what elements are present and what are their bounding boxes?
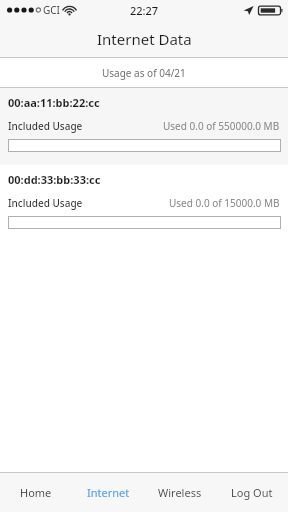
staticText: 00:dd:33:bb:33:cc xyxy=(8,172,101,187)
staticText: Internet xyxy=(87,485,130,500)
staticText: GCI xyxy=(43,3,60,17)
staticText: Usage as of 04/21 xyxy=(102,66,186,80)
staticText: Included Usage xyxy=(8,196,83,210)
staticText: Home xyxy=(20,485,52,500)
staticText: Internet Data xyxy=(97,29,192,49)
staticText: Wireless xyxy=(158,485,202,500)
staticText: Used 0.0 of 15000.0 MB xyxy=(169,196,280,210)
staticText: 00:aa:11:bb:22:cc xyxy=(8,95,100,110)
button[interactable]: 00:dd:33:bb:33:cc xyxy=(0,165,288,242)
staticText: Used 0.0 of 550000.0 MB xyxy=(163,119,280,133)
button[interactable]: Wireless xyxy=(144,473,216,512)
button[interactable]: Internet xyxy=(72,473,144,512)
button[interactable]: 00:aa:11:bb:22:cc xyxy=(0,88,288,165)
staticText: Included Usage xyxy=(8,119,83,133)
button[interactable]: Log Out xyxy=(216,473,288,512)
staticText: Log Out xyxy=(231,485,273,500)
staticText: 22:27 xyxy=(130,3,159,18)
button[interactable]: Home xyxy=(0,473,72,512)
